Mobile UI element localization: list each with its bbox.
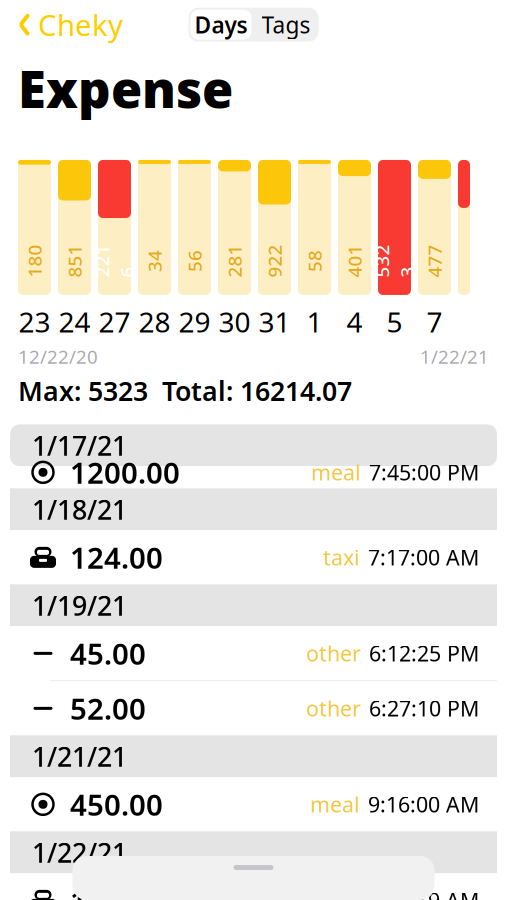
button[interactable]: 450.00 bbox=[10, 777, 497, 831]
staticText: 12/22/20 bbox=[18, 344, 98, 369]
staticText: 1/21/21 bbox=[32, 739, 127, 774]
staticText: 281 bbox=[218, 249, 251, 273]
staticText: 58 bbox=[303, 249, 325, 273]
staticText: 31 bbox=[258, 303, 290, 340]
staticText: meal bbox=[311, 458, 361, 486]
staticText: other bbox=[306, 694, 361, 722]
staticText: 450.00 bbox=[70, 785, 163, 824]
staticText: 1 bbox=[306, 303, 322, 340]
button[interactable]: Tags bbox=[253, 8, 318, 42]
button[interactable]: 45.00 bbox=[10, 626, 497, 681]
staticText: 401 bbox=[338, 249, 371, 273]
staticText: 124.00 bbox=[70, 538, 163, 577]
staticText: 9:16:00 AM bbox=[368, 790, 479, 818]
staticText: 29 bbox=[178, 303, 210, 340]
staticText: Days bbox=[194, 10, 247, 40]
staticText: 180 bbox=[18, 249, 51, 273]
staticText: 1/19/21 bbox=[32, 588, 127, 623]
staticText: other bbox=[306, 639, 361, 667]
staticText: 123.00 bbox=[70, 881, 163, 900]
staticText: Max: 5323 Total: 16214.07 bbox=[18, 373, 352, 408]
button[interactable]: 124.00 bbox=[10, 530, 497, 584]
staticText: taxi bbox=[323, 543, 360, 571]
staticText: 27 bbox=[98, 303, 130, 340]
staticText: 477 bbox=[418, 249, 451, 273]
staticText: 23 bbox=[18, 303, 50, 340]
staticText: 30 bbox=[218, 303, 250, 340]
staticText: 9:11:19 AM bbox=[368, 886, 479, 900]
staticText: 52.00 bbox=[70, 689, 146, 728]
staticText: 34 bbox=[143, 249, 165, 273]
button[interactable]: Days bbox=[188, 8, 253, 42]
staticText: 7:17:00 AM bbox=[368, 543, 479, 571]
staticText: 1/18/21 bbox=[32, 492, 127, 527]
staticText: 1/22/21 bbox=[32, 835, 127, 870]
staticText: 2216 bbox=[98, 236, 131, 286]
staticText: 922 bbox=[258, 249, 291, 273]
staticText: Expense bbox=[18, 55, 233, 122]
staticText: meal bbox=[310, 790, 360, 818]
staticText: 5323 bbox=[378, 236, 411, 286]
staticText: 6:12:25 PM bbox=[369, 639, 479, 667]
staticText: 4 bbox=[346, 303, 362, 340]
staticText: 5 bbox=[386, 303, 402, 340]
staticText: Tags bbox=[261, 10, 310, 40]
staticText: 45.00 bbox=[70, 634, 146, 673]
staticText: 851 bbox=[58, 249, 91, 273]
button[interactable]: 52.00 bbox=[10, 681, 497, 735]
staticText: 1/22/21 bbox=[420, 344, 489, 369]
button[interactable]: 123.00 bbox=[10, 873, 497, 900]
staticText: 28 bbox=[138, 303, 170, 340]
staticText: 56 bbox=[183, 249, 205, 273]
staticText: 1/17/21 bbox=[32, 428, 127, 463]
staticText: 24 bbox=[58, 303, 90, 340]
staticText: 7:45:00 PM bbox=[369, 458, 479, 486]
staticText: 1200.00 bbox=[70, 453, 180, 492]
staticText: 7 bbox=[426, 303, 442, 340]
staticText: Cheky bbox=[38, 5, 123, 44]
button[interactable]: Cheky bbox=[0, 0, 123, 50]
staticText: 6:27:10 PM bbox=[369, 694, 479, 722]
